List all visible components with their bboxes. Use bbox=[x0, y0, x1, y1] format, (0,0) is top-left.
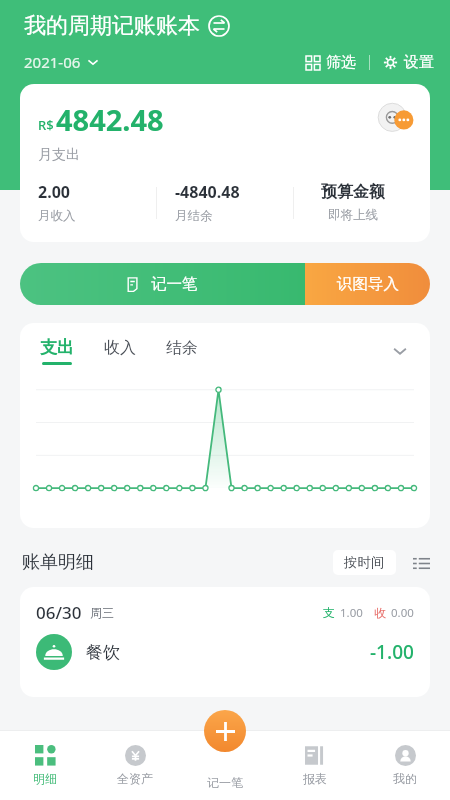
button[interactable]: 结余 bbox=[166, 338, 198, 365]
button[interactable]: 预算金额 bbox=[294, 182, 412, 223]
button[interactable]: 记一笔 bbox=[20, 263, 305, 305]
button[interactable]: -4840.48 bbox=[175, 181, 293, 224]
staticText: 1.00 bbox=[340, 605, 363, 621]
button[interactable]: 06/30 bbox=[20, 587, 430, 697]
staticText: 月支出 bbox=[38, 146, 80, 164]
button[interactable]: 全资产 bbox=[90, 730, 180, 800]
button[interactable]: R$ bbox=[20, 84, 430, 242]
button[interactable]: 展开 bbox=[390, 341, 410, 361]
button[interactable]: 识图导入 bbox=[305, 263, 430, 305]
staticText: 明细 bbox=[33, 771, 57, 786]
staticText: 按时间 bbox=[344, 554, 385, 571]
staticText: 06/30 bbox=[36, 601, 82, 624]
staticText: 报表 bbox=[303, 771, 327, 786]
staticText: 全资产 bbox=[117, 771, 153, 786]
staticText: 识图导入 bbox=[337, 274, 399, 294]
button[interactable]: 列表视图 bbox=[410, 552, 432, 574]
button[interactable]: 我的 bbox=[360, 730, 450, 800]
staticText: 周三 bbox=[90, 605, 114, 620]
staticText: 收 bbox=[374, 605, 386, 620]
button[interactable]: 设置 bbox=[383, 53, 434, 72]
button[interactable]: 记一笔 bbox=[204, 710, 246, 752]
staticText: 筛选 bbox=[326, 53, 356, 72]
staticText: 4842.48 bbox=[56, 100, 164, 139]
button[interactable]: 按时间 bbox=[333, 550, 396, 575]
button[interactable]: 切换账本 bbox=[208, 15, 230, 37]
staticText: 月结余 bbox=[175, 208, 213, 224]
staticText: 餐饮 bbox=[86, 642, 120, 663]
staticText: 月收入 bbox=[38, 208, 76, 224]
staticText: 2021-06 bbox=[24, 52, 81, 72]
staticText: -1.00 bbox=[370, 639, 414, 665]
staticText: 我的 bbox=[393, 771, 417, 786]
staticText: 预算金额 bbox=[321, 182, 385, 202]
staticText: 支出 bbox=[40, 337, 74, 358]
button[interactable]: 账本头像 bbox=[378, 102, 412, 134]
button[interactable]: 筛选 bbox=[306, 53, 356, 72]
button[interactable]: 明细 bbox=[0, 730, 90, 800]
button[interactable]: 报表 bbox=[270, 730, 360, 800]
staticText: 2.00 bbox=[38, 181, 70, 203]
staticText: 结余 bbox=[166, 338, 198, 358]
button[interactable]: 2.00 bbox=[38, 181, 156, 224]
staticText: 记一笔 bbox=[207, 775, 243, 790]
staticText: 记一笔 bbox=[151, 274, 198, 294]
button[interactable]: 收入 bbox=[104, 338, 136, 365]
button[interactable]: 2021-06 bbox=[24, 50, 99, 74]
staticText: 收入 bbox=[104, 338, 136, 358]
staticText: 即将上线 bbox=[328, 207, 378, 223]
staticText: 支 bbox=[323, 605, 335, 620]
staticText: 账单明细 bbox=[22, 551, 94, 574]
staticText: -4840.48 bbox=[175, 181, 240, 203]
staticText: 我的周期记账账本 bbox=[24, 12, 200, 40]
staticText: 设置 bbox=[404, 53, 434, 72]
staticText: R$ bbox=[38, 116, 54, 134]
button[interactable]: 支出 bbox=[40, 337, 74, 365]
staticText: 0.00 bbox=[391, 605, 414, 621]
